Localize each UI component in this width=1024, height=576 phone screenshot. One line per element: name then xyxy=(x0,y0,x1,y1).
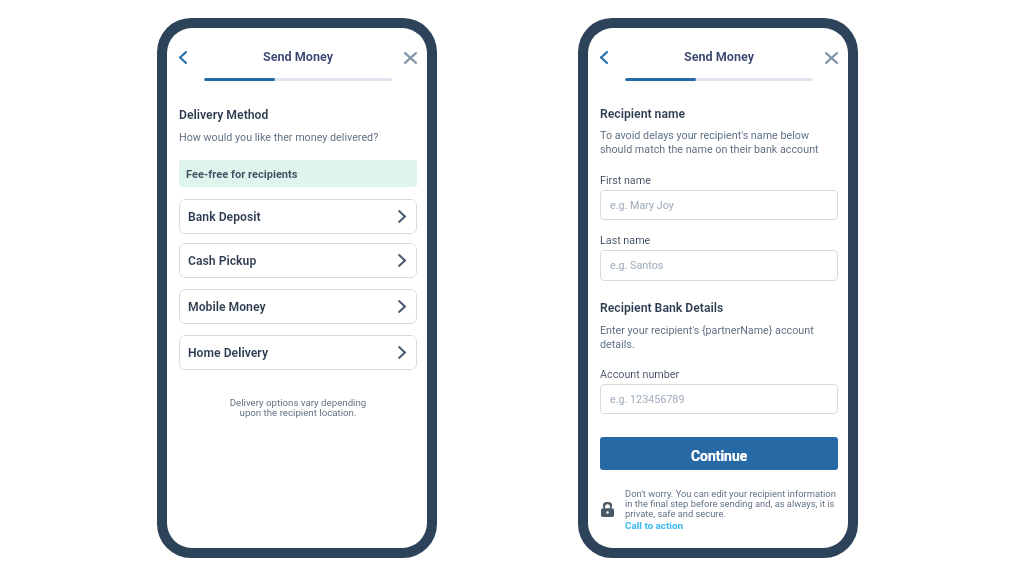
staticText: To avoid delays your recipient's name be… xyxy=(600,129,819,155)
staticText: How would you like ther money delivered? xyxy=(179,131,379,144)
button[interactable]: Mobile Money xyxy=(179,289,417,324)
button[interactable]: Cash Pickup xyxy=(179,243,417,278)
staticText: First name xyxy=(600,174,651,187)
staticText: Recipient name xyxy=(600,107,686,121)
staticText: Send Money xyxy=(263,49,334,64)
staticText: Call to action xyxy=(625,520,684,532)
staticText: Send Money xyxy=(684,49,755,64)
staticText: Delivery options vary depending upon the… xyxy=(179,397,417,419)
staticText: Cash Pickup xyxy=(188,254,257,268)
staticText: Last name xyxy=(600,234,651,247)
staticText: Enter your recipient's {partnerName} acc… xyxy=(600,324,814,350)
staticText: Home Delivery xyxy=(188,346,269,360)
button[interactable]: e.g. Santos xyxy=(600,250,838,281)
button[interactable]: Close xyxy=(817,44,845,72)
staticText: Recipient Bank Details xyxy=(600,301,724,315)
button[interactable]: Back xyxy=(590,43,618,71)
button[interactable]: Close xyxy=(396,44,424,72)
staticText: e.g. Mary Joy xyxy=(610,199,674,212)
staticText: Continue xyxy=(691,448,748,464)
button[interactable]: Home Delivery xyxy=(179,335,417,370)
button[interactable]: Continue xyxy=(600,437,838,470)
button[interactable]: Call to action xyxy=(625,516,685,528)
button[interactable]: e.g. Mary Joy xyxy=(600,190,838,220)
staticText: Fee-free for recipients xyxy=(186,168,298,181)
staticText: Don't worry. You can edit your recipient… xyxy=(625,488,840,519)
staticText: Bank Deposit xyxy=(188,210,261,224)
staticText: Account number xyxy=(600,368,680,381)
staticText: e.g. Santos xyxy=(610,259,664,272)
button[interactable]: Back xyxy=(169,43,197,71)
staticText: e.g. 123456789 xyxy=(610,393,685,406)
button[interactable]: e.g. 123456789 xyxy=(600,384,838,414)
button[interactable]: Bank Deposit xyxy=(179,199,417,234)
staticText: Delivery Method xyxy=(179,108,269,122)
staticText: Mobile Money xyxy=(188,300,266,314)
